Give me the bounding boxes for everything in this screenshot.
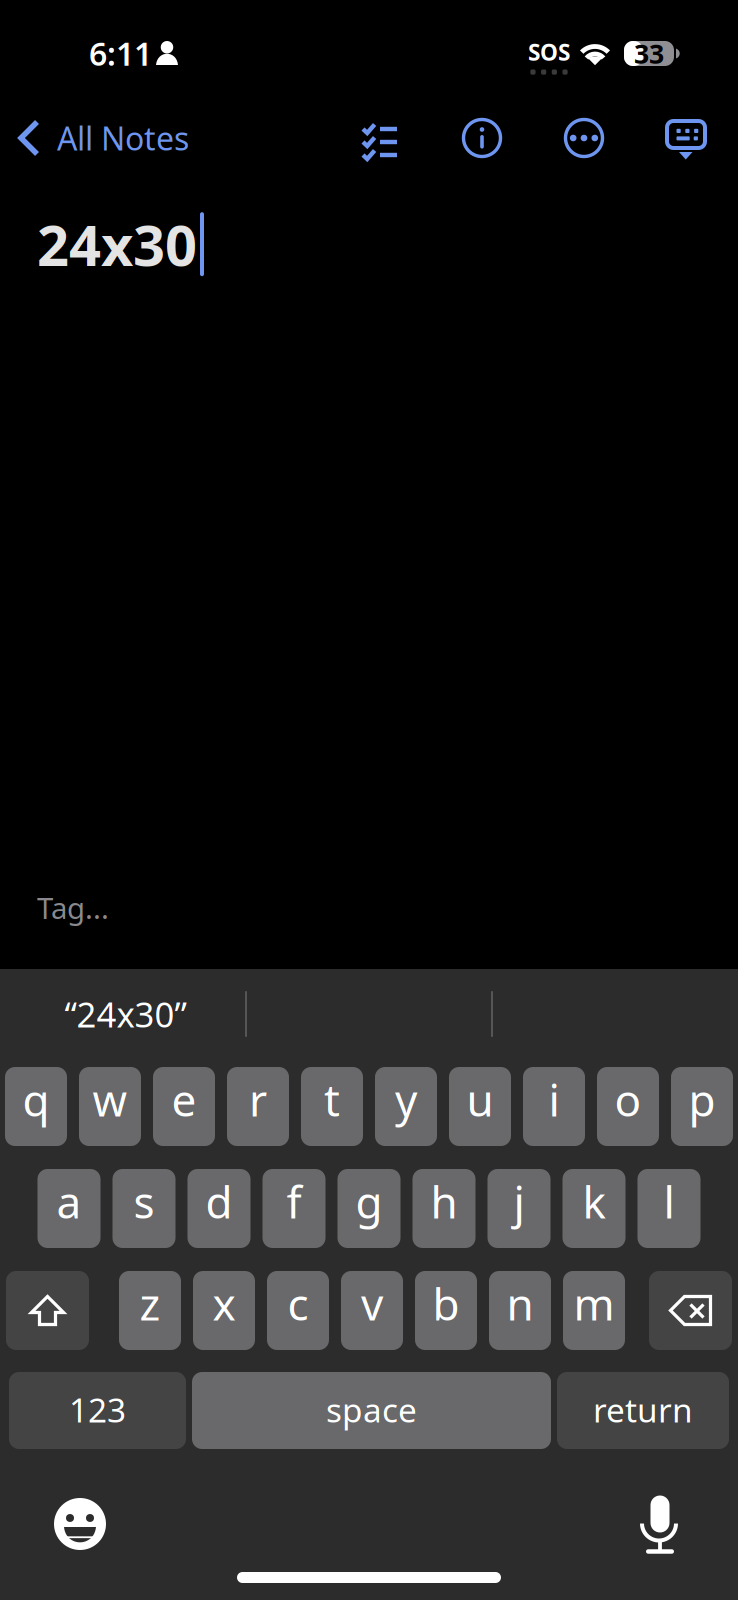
- button[interactable]: t: [301, 1067, 363, 1146]
- button[interactable]: Shift: [6, 1271, 89, 1350]
- button[interactable]: l: [637, 1169, 700, 1248]
- button[interactable]: p: [671, 1067, 733, 1146]
- button[interactable]: j: [487, 1169, 550, 1248]
- staticText: n: [506, 1274, 533, 1333]
- button[interactable]: h: [412, 1169, 475, 1248]
- staticText: 24x30: [37, 207, 197, 281]
- staticText: x: [212, 1274, 235, 1333]
- staticText: v: [361, 1274, 383, 1333]
- button[interactable]: Dictation: [639, 1493, 681, 1555]
- button[interactable]: “24x30”: [0, 982, 245, 1046]
- staticText: s: [133, 1172, 154, 1231]
- button[interactable]: k: [562, 1169, 625, 1248]
- button[interactable]: d: [187, 1169, 250, 1248]
- staticText: f: [286, 1172, 301, 1231]
- staticText: m: [573, 1274, 614, 1333]
- button[interactable]: i: [523, 1067, 585, 1146]
- staticText: b: [432, 1274, 459, 1333]
- button[interactable]: r: [227, 1067, 289, 1146]
- button[interactable]: a: [37, 1169, 100, 1248]
- button[interactable]: w: [79, 1067, 141, 1146]
- staticText: e: [171, 1070, 196, 1129]
- staticText: i: [548, 1070, 559, 1129]
- staticText: 33: [634, 36, 664, 71]
- staticText: r: [249, 1070, 267, 1129]
- button[interactable]: b: [415, 1271, 477, 1350]
- staticText: y: [395, 1070, 417, 1129]
- staticText: w: [92, 1070, 127, 1129]
- button[interactable]: g: [337, 1169, 400, 1248]
- button[interactable]: All Notes: [0, 105, 201, 171]
- button[interactable]: y: [375, 1067, 437, 1146]
- button[interactable]: Checklist: [346, 105, 414, 171]
- staticText: 6:11: [89, 32, 152, 74]
- button[interactable]: Hide Keyboard: [652, 105, 720, 171]
- staticText: SOS: [528, 37, 570, 67]
- button[interactable]: q: [5, 1067, 67, 1146]
- staticText: j: [513, 1172, 524, 1231]
- staticText: return: [593, 1387, 693, 1432]
- staticText: z: [139, 1274, 160, 1333]
- staticText: g: [355, 1172, 382, 1231]
- staticText: h: [430, 1172, 457, 1231]
- button[interactable]: 123: [9, 1372, 186, 1449]
- staticText: 123: [69, 1387, 126, 1432]
- button[interactable]: Emoji: [54, 1498, 106, 1550]
- button[interactable]: space: [192, 1372, 551, 1449]
- button[interactable]: return: [557, 1372, 729, 1449]
- staticText: p: [688, 1070, 715, 1129]
- staticText: a: [56, 1172, 81, 1231]
- staticText: “24x30”: [64, 991, 186, 1037]
- staticText: k: [582, 1172, 605, 1231]
- staticText: space: [326, 1387, 417, 1432]
- staticText: All Notes: [57, 117, 189, 159]
- staticText: Tag...: [37, 888, 109, 927]
- button[interactable]: c: [267, 1271, 329, 1350]
- button[interactable]: u: [449, 1067, 511, 1146]
- staticText: o: [614, 1070, 641, 1129]
- button[interactable]: Info: [448, 105, 516, 171]
- button[interactable]: v: [341, 1271, 403, 1350]
- button[interactable]: o: [597, 1067, 659, 1146]
- button[interactable]: More: [550, 105, 618, 171]
- staticText: d: [205, 1172, 232, 1231]
- button[interactable]: f: [262, 1169, 325, 1248]
- staticText: u: [466, 1070, 493, 1129]
- button[interactable]: m: [563, 1271, 625, 1350]
- button[interactable]: z: [119, 1271, 181, 1350]
- staticText: c: [287, 1274, 308, 1333]
- staticText: q: [22, 1070, 49, 1129]
- button[interactable]: x: [193, 1271, 255, 1350]
- staticText: l: [663, 1172, 674, 1231]
- staticText: t: [324, 1070, 340, 1129]
- button[interactable]: Delete: [649, 1271, 732, 1350]
- button[interactable]: e: [153, 1067, 215, 1146]
- button[interactable]: s: [112, 1169, 175, 1248]
- button[interactable]: n: [489, 1271, 551, 1350]
